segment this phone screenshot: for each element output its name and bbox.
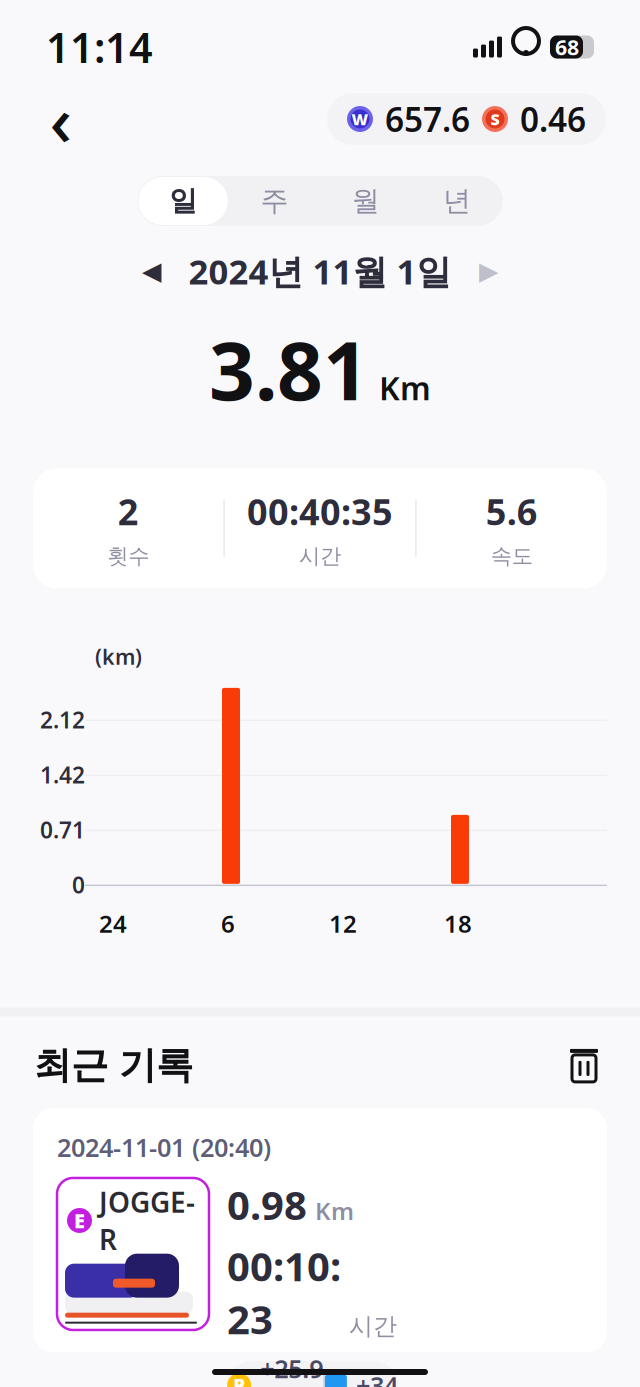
staticText: 2024-11-01 (20:40): [57, 1130, 271, 1164]
button[interactable]: Back: [34, 92, 88, 146]
staticText: 18: [444, 908, 472, 939]
staticText: 0.98: [227, 1178, 307, 1231]
button[interactable]: 주: [229, 176, 320, 226]
staticText: JOGGER: [99, 1183, 195, 1258]
staticText: 11:14: [46, 20, 153, 74]
staticText: 0: [72, 870, 85, 900]
staticText: 일: [169, 184, 197, 218]
staticText: 6: [221, 908, 235, 939]
staticText: 2: [118, 487, 139, 535]
staticText: +25.98: [260, 1352, 323, 1387]
staticText: 68: [555, 33, 579, 61]
staticText: Km: [379, 366, 431, 409]
button[interactable]: Previous day: [128, 248, 174, 294]
staticText: 주: [260, 184, 288, 218]
staticText: 5.6: [486, 487, 538, 535]
staticText: 3.81: [209, 316, 369, 422]
staticText: 00:10:23: [227, 1239, 341, 1345]
button[interactable]: 월: [320, 176, 411, 226]
button[interactable]: W: [327, 93, 606, 145]
staticText: Km: [315, 1195, 354, 1227]
staticText: E: [74, 1207, 85, 1234]
staticText: P: [233, 1373, 245, 1387]
button[interactable]: 년: [411, 176, 502, 226]
staticText: +34: [356, 1368, 398, 1387]
button[interactable]: 일: [137, 176, 229, 226]
staticText: ◀: [142, 257, 161, 285]
staticText: 1.42: [40, 760, 85, 790]
staticText: 0.71: [40, 815, 85, 845]
staticText: ▶: [479, 257, 498, 285]
staticText: 최근 기록: [34, 1042, 193, 1088]
staticText: 00:40:35: [247, 487, 393, 535]
staticText: 2.12: [40, 705, 85, 735]
staticText: 12: [329, 908, 357, 939]
staticText: 0.46: [520, 97, 586, 141]
staticText: S: [490, 108, 499, 130]
staticText: 2024년 11월 1일: [188, 248, 451, 294]
staticText: 657.6: [385, 97, 470, 141]
button[interactable]: Delete records: [562, 1043, 606, 1087]
staticText: 시간: [299, 543, 341, 569]
staticText: 횟수: [107, 543, 149, 569]
button[interactable]: Next day: [465, 248, 511, 294]
staticText: 24: [99, 908, 127, 939]
staticText: 속도: [491, 543, 533, 569]
button[interactable]: 2024-11-01 (20:40): [33, 1108, 607, 1352]
staticText: 월: [352, 184, 380, 218]
staticText: 년: [443, 184, 471, 218]
staticText: ‹: [49, 73, 72, 165]
staticText: 시간: [349, 1312, 397, 1341]
staticText: (km): [95, 642, 142, 671]
staticText: W: [351, 108, 368, 130]
